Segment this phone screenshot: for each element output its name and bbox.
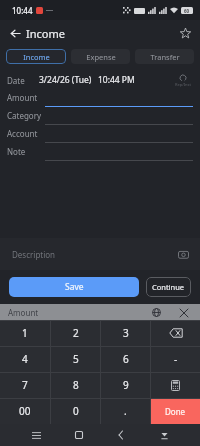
button[interactable]: Done	[151, 398, 200, 424]
staticText: 4	[22, 352, 28, 366]
button[interactable]: 9	[101, 372, 150, 398]
staticText: Amount	[8, 307, 39, 318]
staticText: 9	[123, 378, 129, 392]
staticText: Continue	[152, 282, 185, 292]
button[interactable]: Favorite	[175, 23, 195, 43]
staticText: 60	[184, 8, 190, 14]
button[interactable]: 8	[51, 372, 100, 398]
button[interactable]: Note	[7, 143, 193, 161]
button[interactable]: Calculator	[151, 372, 200, 398]
button[interactable]: 5	[51, 346, 100, 372]
button[interactable]: Repeat or Installment	[173, 72, 193, 89]
button[interactable]: 6	[101, 346, 150, 372]
staticText: 5	[73, 352, 79, 366]
button[interactable]: Home	[71, 427, 87, 443]
staticText: 0	[73, 404, 79, 418]
staticText: 6	[123, 352, 129, 366]
staticText: Account	[7, 128, 38, 139]
staticText: -	[174, 352, 178, 366]
staticText: 1	[22, 326, 28, 340]
button[interactable]: 7	[0, 372, 50, 398]
staticText: 3/24/26 (Tue) 10:44 PM	[39, 74, 135, 86]
staticText: 2	[73, 326, 79, 340]
staticText: Amount	[7, 92, 38, 103]
staticText: Description	[12, 249, 56, 260]
button[interactable]: Transfer	[135, 49, 194, 64]
button[interactable]: Hide keyboard	[156, 427, 172, 443]
staticText: Expense	[86, 52, 116, 62]
button[interactable]: 3	[101, 320, 150, 346]
button[interactable]: .	[101, 398, 150, 424]
button[interactable]: 00	[0, 398, 50, 424]
staticText: 10:44	[12, 5, 33, 16]
button[interactable]: Back	[5, 23, 25, 43]
staticText: Note	[7, 146, 26, 157]
button[interactable]: Category	[7, 107, 193, 125]
staticText: Transfer	[150, 52, 180, 62]
staticText: Done	[165, 406, 186, 417]
button[interactable]: Description	[0, 238, 200, 270]
staticText: Rep/Inst	[175, 82, 191, 87]
button[interactable]: Menu	[28, 427, 44, 443]
button[interactable]: Add photo	[176, 247, 190, 261]
button[interactable]: 2	[51, 320, 100, 346]
staticText: Category	[7, 110, 42, 121]
button[interactable]: 4	[0, 346, 50, 372]
button[interactable]: Save	[9, 277, 139, 297]
button[interactable]: Account	[7, 125, 193, 143]
staticText: Income	[23, 52, 50, 62]
staticText: 00	[19, 404, 31, 418]
staticText: 8	[73, 378, 79, 392]
button[interactable]: Amount	[7, 89, 193, 107]
button[interactable]: Backspace	[151, 320, 200, 346]
button[interactable]: 1	[0, 320, 50, 346]
button[interactable]: Continue	[146, 277, 191, 297]
staticText: 3	[123, 326, 129, 340]
staticText: .	[124, 404, 127, 418]
staticText: Save	[65, 281, 84, 293]
button[interactable]: Expense	[71, 49, 130, 64]
staticText: Date	[7, 75, 25, 86]
button[interactable]: 0	[51, 398, 100, 424]
button[interactable]: Back	[113, 427, 129, 443]
button[interactable]: -	[151, 346, 200, 372]
staticText: Income	[26, 26, 65, 41]
button[interactable]: Change language	[150, 306, 163, 319]
button[interactable]: Close keyboard	[177, 306, 190, 319]
button[interactable]: Income	[6, 49, 66, 64]
staticText: 7	[22, 378, 28, 392]
